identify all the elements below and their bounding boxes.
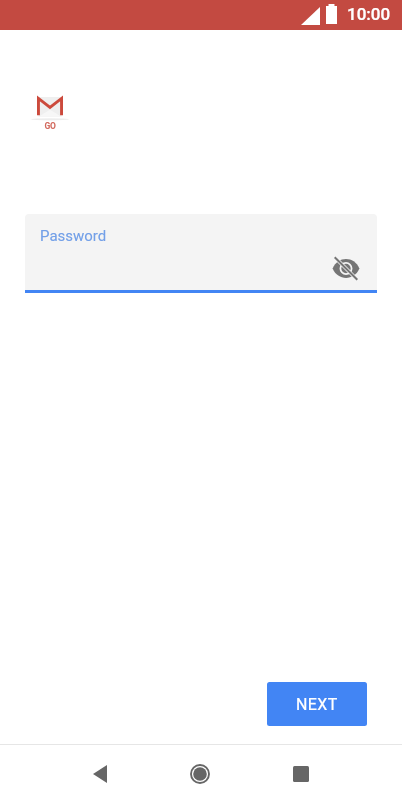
staticText: NEXT	[296, 695, 338, 714]
button[interactable]: Home	[176, 750, 224, 798]
staticText: GO	[44, 121, 56, 131]
staticText: 10:00	[347, 4, 391, 24]
button[interactable]: NEXT	[267, 682, 367, 726]
button[interactable]: Show password	[322, 244, 370, 292]
button[interactable]: Back	[76, 750, 124, 798]
staticText: Password	[40, 227, 107, 245]
button[interactable]: Password	[25, 214, 377, 290]
button[interactable]: Recent apps	[277, 750, 325, 798]
